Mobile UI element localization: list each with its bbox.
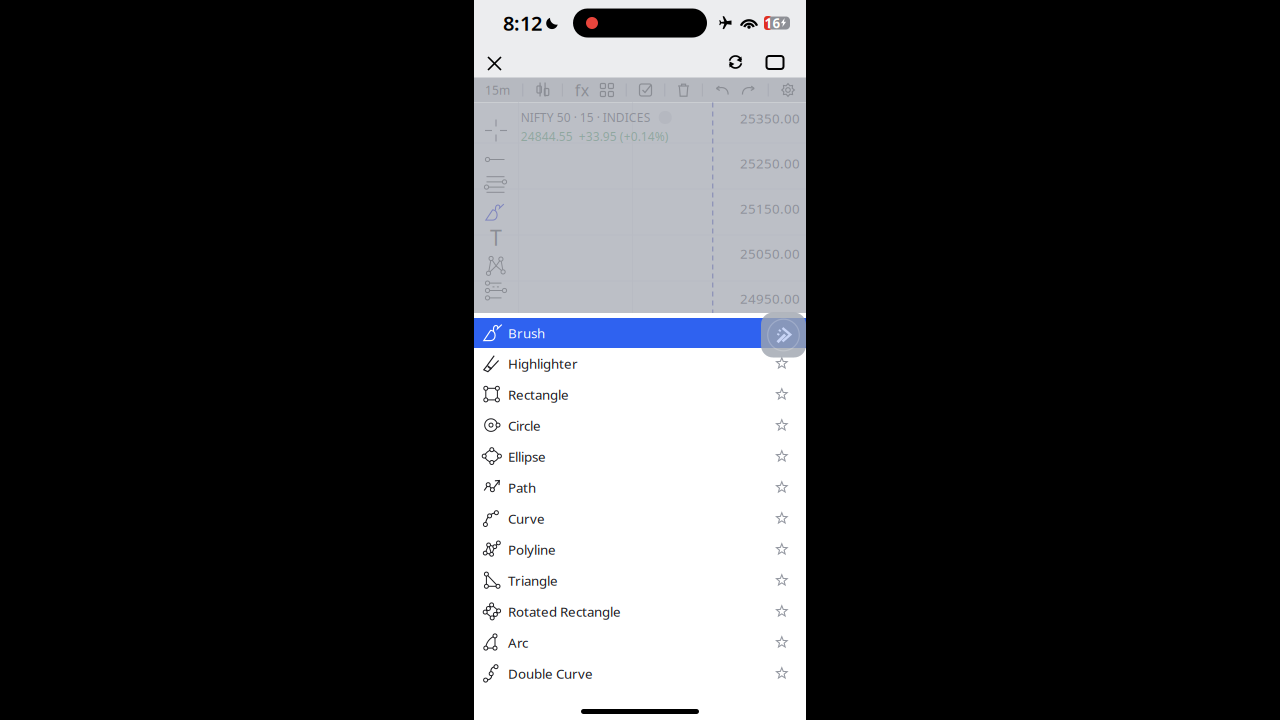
- staticText: Highlighter: [508, 355, 578, 372]
- staticText: 24844.55: [521, 128, 573, 144]
- staticText: Brush: [508, 324, 545, 342]
- button[interactable]: Polyline: [474, 534, 806, 565]
- staticText: Circle: [508, 417, 541, 434]
- button[interactable]: Rotated Rectangle: [474, 596, 806, 627]
- staticText: fx: [575, 79, 589, 101]
- staticText: Path: [508, 479, 536, 496]
- staticText: +33.95 (+0.14%): [579, 128, 669, 144]
- button[interactable]: Layout: [756, 47, 794, 77]
- button[interactable]: Close: [480, 48, 507, 77]
- button[interactable]: Brush: [474, 318, 806, 348]
- staticText: 25050.00: [740, 245, 800, 262]
- staticText: 25350.00: [740, 109, 800, 127]
- button[interactable]: Curve: [474, 503, 806, 534]
- staticText: 24950.00: [740, 290, 800, 307]
- staticText: Polyline: [508, 541, 556, 558]
- staticText: 25250.00: [740, 155, 800, 172]
- button[interactable]: Double Curve: [474, 658, 806, 689]
- staticText: Arc: [508, 634, 528, 651]
- staticText: Double Curve: [508, 665, 593, 682]
- button[interactable]: Triangle: [474, 565, 806, 596]
- staticText: Rectangle: [508, 386, 569, 403]
- staticText: Rotated Rectangle: [508, 603, 621, 620]
- button[interactable]: Refresh: [716, 47, 756, 77]
- staticText: Triangle: [508, 572, 558, 589]
- staticText: Curve: [508, 510, 545, 527]
- staticText: Ellipse: [508, 448, 546, 465]
- staticText: 15m: [485, 82, 510, 98]
- button[interactable]: Magnet mode: [761, 312, 806, 357]
- button[interactable]: Ellipse: [474, 441, 806, 472]
- button[interactable]: Circle: [474, 410, 806, 441]
- button[interactable]: Highlighter: [474, 348, 806, 379]
- staticText: T: [490, 223, 502, 252]
- button[interactable]: Arc: [474, 627, 806, 658]
- staticText: NIFTY 50 · 15 · INDICES: [521, 109, 651, 125]
- staticText: 16: [764, 14, 780, 32]
- button[interactable]: Rectangle: [474, 379, 806, 410]
- staticText: 25150.00: [740, 200, 800, 217]
- button[interactable]: Path: [474, 472, 806, 503]
- staticText: 8:12: [503, 10, 542, 36]
